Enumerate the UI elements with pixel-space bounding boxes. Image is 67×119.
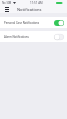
staticText: No SIM	[2, 1, 12, 5]
staticText: Personal Case Notifications	[4, 21, 54, 25]
button[interactable]: Alarm Notifications	[0, 31, 67, 42]
button[interactable]: Menu	[3, 5, 11, 13]
staticText: Notifications	[17, 7, 42, 12]
button[interactable]: Toggle off	[54, 34, 64, 40]
button[interactable]: Personal Case Notifications	[0, 17, 67, 28]
staticText: 11:51 AM	[30, 1, 43, 5]
button[interactable]: Toggle on	[54, 20, 64, 26]
staticText: Alarm Notifications	[4, 35, 54, 39]
